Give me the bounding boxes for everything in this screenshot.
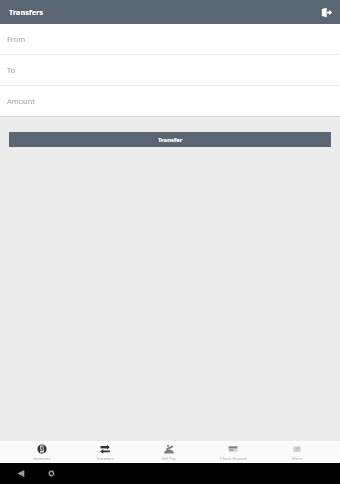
- button[interactable]: Accounts: [10, 441, 73, 463]
- staticText: Amount: [7, 96, 35, 106]
- staticText: Transfer: [158, 136, 183, 144]
- button[interactable]: Log out: [321, 7, 332, 18]
- button[interactable]: From: [0, 24, 340, 54]
- staticText: Bill Pay: [162, 456, 176, 461]
- staticText: To: [7, 65, 16, 75]
- button[interactable]: Transfers: [73, 441, 137, 463]
- button[interactable]: Home: [44, 467, 58, 481]
- button[interactable]: Bill Pay: [137, 441, 201, 463]
- button[interactable]: Check Deposit: [201, 441, 265, 463]
- button[interactable]: More: [265, 441, 329, 463]
- staticText: Transfers: [9, 7, 44, 17]
- staticText: More: [292, 456, 302, 461]
- staticText: Accounts: [33, 456, 51, 461]
- button[interactable]: Transfer: [9, 132, 331, 147]
- staticText: Transfers: [96, 456, 114, 461]
- button[interactable]: Back: [14, 467, 28, 481]
- staticText: Check Deposit: [220, 456, 247, 461]
- button[interactable]: Amount: [0, 86, 340, 116]
- staticText: From: [7, 34, 26, 44]
